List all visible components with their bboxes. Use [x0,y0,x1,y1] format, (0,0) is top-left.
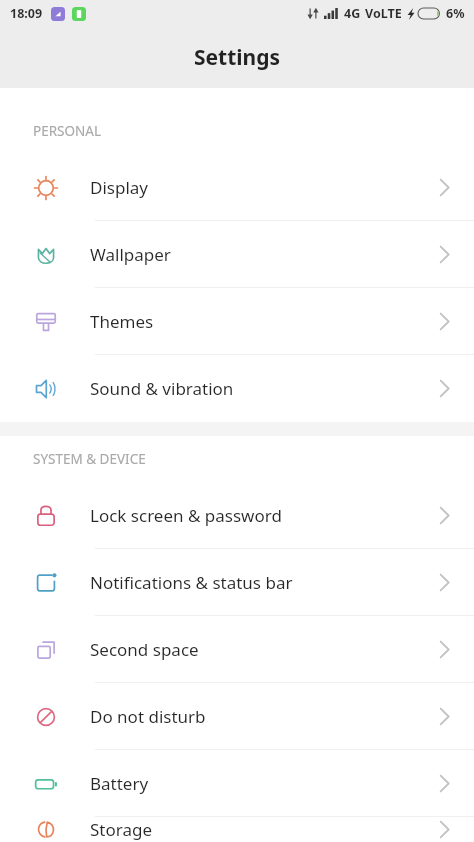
button[interactable]: Battery [0,750,474,817]
other: Battery [32,770,60,798]
button[interactable]: Do not disturb [0,683,474,750]
other: Notifications [32,569,60,597]
staticText: SYSTEM & DEVICE [33,450,146,468]
button[interactable]: Storage [0,817,474,842]
staticText: Sound & vibration [90,377,234,400]
other: Do not disturb [32,703,60,731]
other: Display [32,174,60,202]
other: Second space [32,636,60,664]
other: Wallpaper [32,241,60,269]
staticText: Wallpaper [90,243,171,266]
staticText: Notifications & status bar [90,571,293,594]
other: Lock [32,502,60,530]
staticText: Storage [90,818,153,841]
other: Storage [32,817,60,842]
button[interactable]: Wallpaper [0,221,474,288]
button[interactable]: Notifications [0,549,474,616]
other: Themes [32,308,60,336]
button[interactable]: Second space [0,616,474,683]
other: Sound [32,375,60,403]
staticText: 6% [446,5,465,22]
staticText: Display [90,176,148,199]
staticText: 4G [344,5,361,22]
staticText: Second space [90,638,199,661]
staticText: Do not disturb [90,705,206,728]
staticText: 18:09 [10,5,43,22]
button[interactable]: Lock [0,482,474,549]
button[interactable]: Themes [0,288,474,355]
staticText: VoLTE [365,5,402,22]
staticText: Lock screen & password [90,504,282,527]
staticText: Themes [90,310,154,333]
button[interactable]: Sound [0,355,474,422]
staticText: PERSONAL [33,122,101,140]
staticText: Battery [90,772,149,795]
staticText: Settings [194,43,281,72]
button[interactable]: Display [0,154,474,221]
